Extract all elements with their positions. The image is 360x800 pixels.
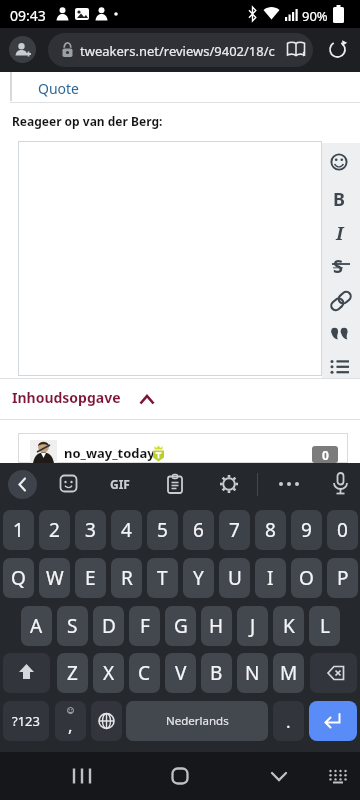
button[interactable] xyxy=(8,470,37,499)
button[interactable]: A xyxy=(21,606,52,646)
staticText: E xyxy=(85,565,96,591)
staticText: 7 xyxy=(229,517,240,543)
staticText: X xyxy=(103,660,115,686)
button[interactable]: N xyxy=(237,653,268,693)
button[interactable]: B xyxy=(201,653,232,693)
button[interactable]: , xyxy=(55,701,86,741)
staticText: H xyxy=(209,613,224,639)
staticText: Y xyxy=(193,565,204,591)
button[interactable]: 2 xyxy=(39,510,70,550)
staticText: B xyxy=(333,187,345,212)
button[interactable]: H xyxy=(201,606,232,646)
button[interactable]: ?123 xyxy=(3,701,49,741)
staticText: T xyxy=(157,565,168,591)
staticText: tweakers.net/reviews/9402/18/c xyxy=(80,42,275,60)
staticText: M xyxy=(280,660,298,686)
staticText: 09:43 xyxy=(10,6,46,25)
button[interactable]: 6 xyxy=(183,510,214,550)
staticText: Nederlands xyxy=(166,713,229,729)
button[interactable]: 0 xyxy=(327,510,358,550)
staticText: , xyxy=(68,714,73,737)
button[interactable]: Inhoudsopgave xyxy=(12,388,121,407)
staticText: P xyxy=(337,565,349,591)
staticText: N xyxy=(245,660,260,686)
staticText: O xyxy=(299,565,314,591)
button[interactable]: O xyxy=(291,558,322,598)
staticText: 8 xyxy=(265,517,276,543)
button[interactable]: P xyxy=(327,558,358,598)
staticText: 4 xyxy=(121,517,132,543)
staticText: G xyxy=(174,613,188,639)
staticText: A xyxy=(30,613,43,639)
button[interactable] xyxy=(91,701,122,741)
button[interactable]: T xyxy=(147,558,178,598)
button[interactable]: R xyxy=(111,558,142,598)
staticText: ?123 xyxy=(12,712,40,730)
button[interactable]: L xyxy=(309,606,340,646)
staticText: 3 xyxy=(85,517,96,543)
button[interactable]: E xyxy=(75,558,106,598)
staticText: 90% xyxy=(302,7,328,25)
button[interactable]: Quote xyxy=(38,79,80,98)
button[interactable]: tweakers.net/reviews/9402/18/c xyxy=(48,33,313,67)
button[interactable] xyxy=(59,474,79,494)
button[interactable]: D xyxy=(93,606,124,646)
staticText: B xyxy=(210,660,223,686)
staticText: I xyxy=(267,565,274,591)
button[interactable]: . xyxy=(273,701,304,741)
button[interactable]: C xyxy=(129,653,160,693)
button[interactable] xyxy=(64,760,100,792)
button[interactable] xyxy=(332,472,349,496)
button[interactable]: S xyxy=(57,606,88,646)
button[interactable]: W xyxy=(39,558,70,598)
button[interactable] xyxy=(3,653,50,693)
button[interactable] xyxy=(162,760,198,792)
button[interactable] xyxy=(166,474,184,494)
staticText: J xyxy=(250,613,256,639)
button[interactable]: 1 xyxy=(3,510,34,550)
staticText: 5 xyxy=(157,517,168,543)
button[interactable]: 5 xyxy=(147,510,178,550)
button[interactable]: I xyxy=(255,558,286,598)
staticText: S xyxy=(67,613,78,639)
staticText: I xyxy=(336,221,344,246)
button[interactable] xyxy=(261,760,297,792)
staticText: Q xyxy=(11,565,26,591)
button[interactable]: Q xyxy=(3,558,34,598)
button[interactable]: Y xyxy=(183,558,214,598)
button[interactable] xyxy=(309,701,357,741)
button[interactable] xyxy=(322,40,354,60)
button[interactable]: GIF xyxy=(106,475,134,493)
button[interactable]: V xyxy=(165,653,196,693)
staticText: Reageer op van der Berg: xyxy=(12,113,163,129)
button[interactable]: no_way_today xyxy=(64,444,155,462)
staticText: 0 xyxy=(322,447,329,463)
button[interactable]: 8 xyxy=(255,510,286,550)
staticText: K xyxy=(283,613,295,639)
button[interactable] xyxy=(310,653,357,693)
button[interactable]: J xyxy=(237,606,268,646)
button[interactable]: 7 xyxy=(219,510,250,550)
button[interactable]: 9 xyxy=(291,510,322,550)
button[interactable] xyxy=(272,475,306,493)
button[interactable]: Z xyxy=(57,653,88,693)
button[interactable]: U xyxy=(219,558,250,598)
staticText: D xyxy=(102,613,116,639)
staticText: 1 xyxy=(13,517,24,543)
button[interactable]: Nederlands xyxy=(126,701,268,741)
staticText: W xyxy=(46,565,64,591)
button[interactable]: 4 xyxy=(111,510,142,550)
staticText: U xyxy=(228,565,242,591)
button[interactable] xyxy=(9,36,36,63)
button[interactable]: K xyxy=(273,606,304,646)
button[interactable] xyxy=(326,764,350,788)
button[interactable]: F xyxy=(129,606,160,646)
staticText: F xyxy=(140,613,150,639)
button[interactable]: 3 xyxy=(75,510,106,550)
button[interactable] xyxy=(219,474,239,494)
staticText: . xyxy=(286,710,291,733)
button[interactable]: M xyxy=(273,653,304,693)
button[interactable]: X xyxy=(93,653,124,693)
button[interactable] xyxy=(18,141,322,376)
button[interactable]: G xyxy=(165,606,196,646)
